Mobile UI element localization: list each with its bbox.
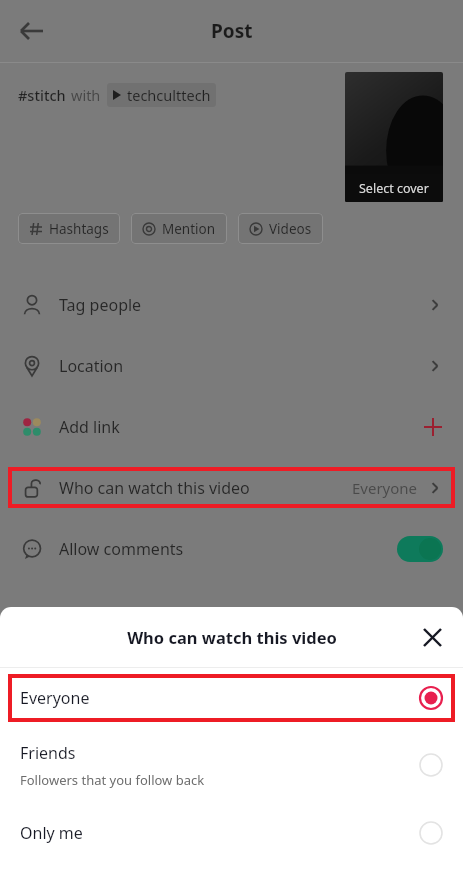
button[interactable]: techculttech — [107, 83, 216, 107]
staticText: Who can watch this video — [127, 626, 337, 648]
staticText: Location — [59, 355, 124, 377]
button[interactable]: Everyone — [0, 668, 463, 727]
staticText: Add link — [59, 416, 120, 438]
staticText: techculttech — [127, 85, 211, 105]
staticText: Hashtags — [49, 220, 109, 238]
button[interactable]: Back — [10, 9, 54, 53]
staticText: with — [71, 85, 101, 105]
staticText: Only me — [20, 822, 83, 844]
staticText: Everyone — [352, 478, 418, 498]
button[interactable]: Videos — [238, 213, 323, 244]
button[interactable]: Friends — [0, 727, 463, 803]
staticText: Post — [211, 18, 253, 44]
button[interactable]: Allow comments — [0, 518, 463, 579]
staticText: Select cover — [359, 180, 429, 197]
button[interactable]: Location — [0, 335, 463, 396]
button[interactable]: Close — [411, 616, 453, 658]
staticText: Tag people — [59, 294, 142, 316]
staticText: Who can watch this video — [59, 477, 250, 499]
button[interactable] — [397, 536, 443, 562]
staticText: Everyone — [20, 687, 90, 709]
staticText: #stitch — [18, 85, 66, 105]
button[interactable]: Add link — [0, 396, 463, 457]
staticText: Videos — [269, 220, 312, 238]
staticText: Allow comments — [59, 538, 184, 560]
staticText: Mention — [162, 220, 216, 238]
button[interactable]: Mention — [131, 213, 227, 244]
button[interactable]: Who can watch this video — [0, 457, 463, 518]
staticText: Friends — [20, 742, 76, 764]
staticText: Followers that you follow back — [20, 771, 205, 789]
button[interactable]: Hashtags — [18, 213, 120, 244]
button[interactable]: Tag people — [0, 274, 463, 335]
button[interactable]: Only me — [0, 803, 463, 862]
button[interactable]: Select cover — [345, 72, 443, 202]
